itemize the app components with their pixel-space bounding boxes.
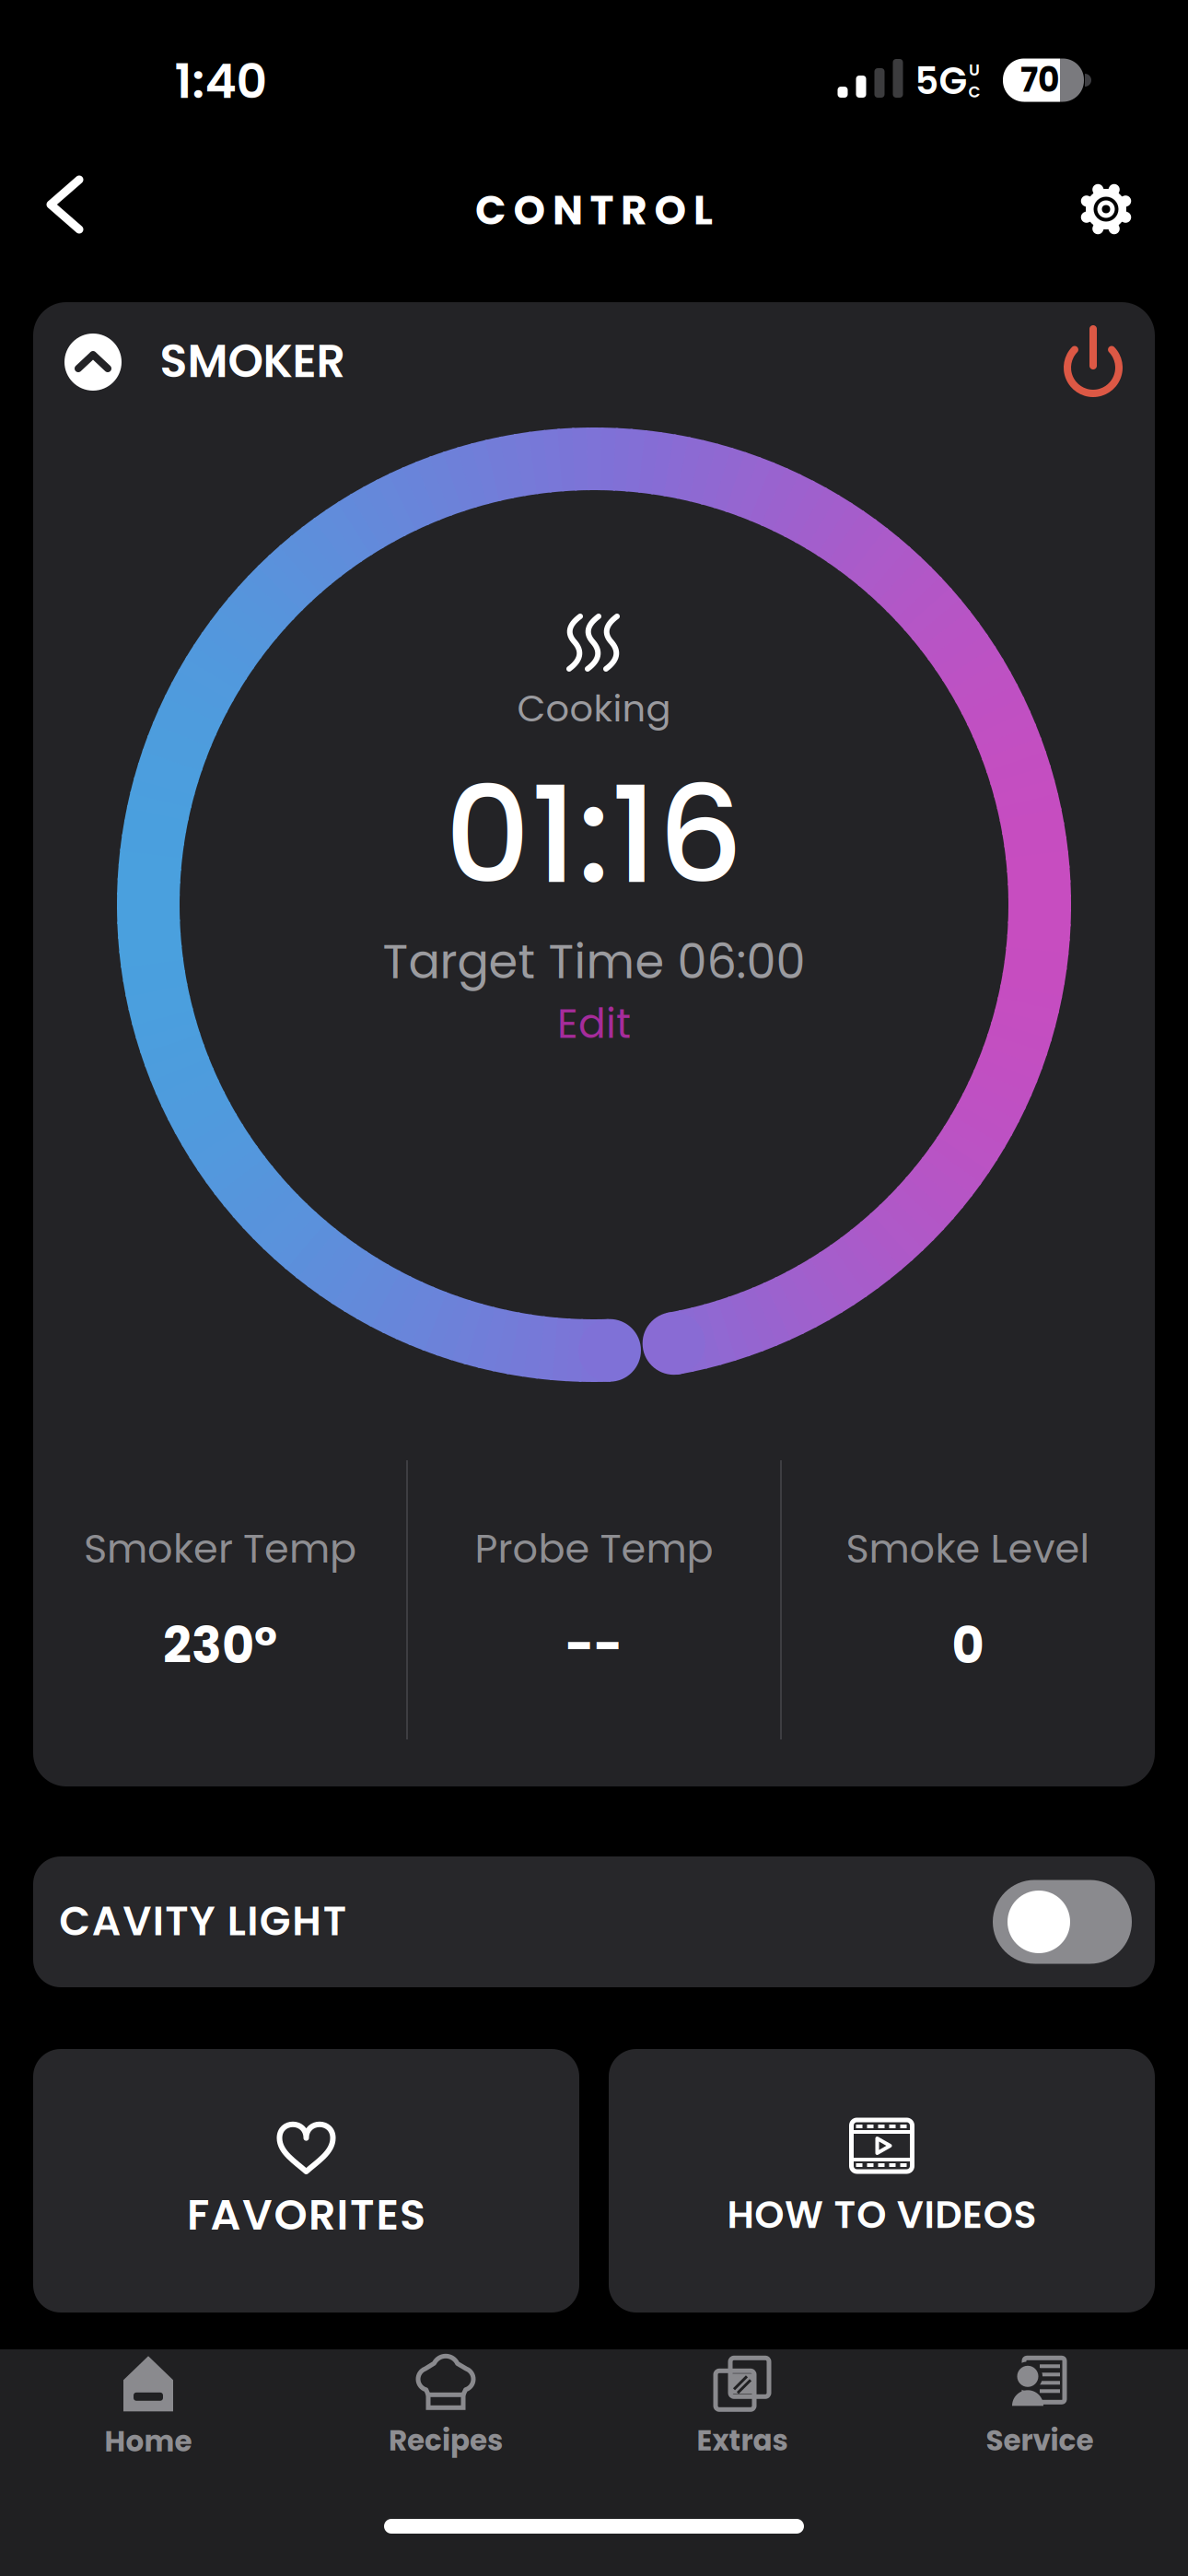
staticText: 1:40 xyxy=(175,48,268,115)
button[interactable]: Back xyxy=(46,180,98,240)
staticText: CONTROL xyxy=(475,182,713,238)
button[interactable]: Home xyxy=(105,2355,192,2461)
button[interactable]: HOW TO VIDEOS xyxy=(609,2049,1155,2313)
staticText: CAVITY LIGHT xyxy=(59,1893,346,1949)
staticText: Recipes xyxy=(389,2421,503,2461)
button[interactable]: FAVORITES xyxy=(33,2049,579,2313)
button[interactable]: Cavity Light xyxy=(993,1880,1132,1964)
button[interactable]: Settings xyxy=(1074,177,1138,241)
staticText: Smoker Temp xyxy=(84,1521,356,1576)
staticText: Edit xyxy=(557,995,631,1052)
staticText: Cooking xyxy=(517,683,671,734)
button[interactable]: Power xyxy=(1056,327,1130,401)
staticText: 0 xyxy=(952,1611,984,1680)
staticText: Target Time 06:00 xyxy=(383,929,805,995)
staticText: U xyxy=(969,59,980,81)
staticText: HOW TO VIDEOS xyxy=(727,2188,1037,2241)
staticText: Smoke Level xyxy=(846,1521,1090,1576)
staticText: -- xyxy=(565,1611,623,1680)
staticText: Service xyxy=(986,2421,1094,2461)
staticText: Home xyxy=(105,2421,192,2461)
staticText: FAVORITES xyxy=(187,2185,425,2245)
staticText: Probe Temp xyxy=(475,1521,713,1576)
button[interactable]: Service xyxy=(986,2356,1094,2461)
staticText: 01:16 xyxy=(445,741,743,928)
button[interactable]: Collapse xyxy=(64,334,122,391)
staticText: Extras xyxy=(697,2421,788,2461)
staticText: 230° xyxy=(163,1611,277,1680)
staticText: 70 xyxy=(1020,57,1059,103)
button[interactable]: Edit xyxy=(557,995,631,1052)
staticText: SMOKER xyxy=(160,330,345,393)
staticText: C xyxy=(968,81,980,103)
staticText: 5G xyxy=(915,55,967,107)
button[interactable]: Extras xyxy=(697,2356,788,2461)
button[interactable]: Recipes xyxy=(389,2356,503,2461)
